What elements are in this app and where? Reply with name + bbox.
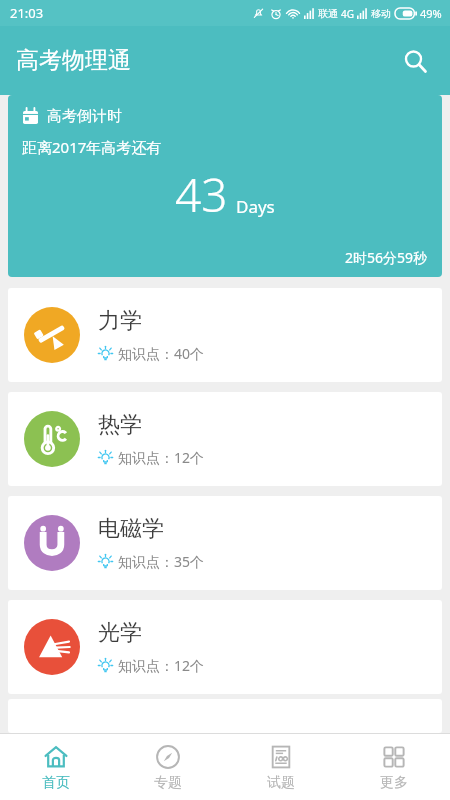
staticText: 4G xyxy=(341,7,354,21)
staticText: 试题 xyxy=(267,774,295,792)
staticText: 2时56分59秒 xyxy=(345,248,428,267)
staticText: 知识点：12个 xyxy=(118,448,205,467)
staticText: 电磁学 xyxy=(98,515,164,543)
button[interactable]: 热学 xyxy=(8,392,442,486)
button[interactable]: Search xyxy=(388,34,442,88)
staticText: 高考倒计时 xyxy=(47,107,122,126)
button[interactable]: 高考倒计时 xyxy=(8,95,442,277)
button[interactable]: 首页 xyxy=(0,734,112,800)
staticText: 光学 xyxy=(98,619,142,647)
button[interactable]: 专题 xyxy=(112,734,224,800)
staticText: 热学 xyxy=(98,411,142,439)
staticText: 49% xyxy=(420,6,442,21)
staticText: 专题 xyxy=(154,774,182,792)
staticText: 21:03 xyxy=(10,4,44,22)
staticText: 更多 xyxy=(380,774,408,792)
staticText: 知识点：35个 xyxy=(118,552,205,571)
staticText: 首页 xyxy=(42,774,70,792)
staticText: 移动 xyxy=(371,7,391,20)
staticText: 力学 xyxy=(98,307,142,335)
button[interactable]: 更多 xyxy=(337,734,450,800)
staticText: 距离2017年高考还有 xyxy=(22,137,162,157)
staticText: 43 xyxy=(175,163,228,226)
staticText: 知识点：40个 xyxy=(118,344,205,363)
staticText: Days xyxy=(236,195,275,218)
button[interactable]: 力学 xyxy=(8,288,442,382)
button[interactable]: 电磁学 xyxy=(8,496,442,590)
staticText: 知识点：12个 xyxy=(118,656,205,675)
staticText: 高考物理通 xyxy=(16,46,131,75)
button[interactable]: 光学 xyxy=(8,600,442,694)
button[interactable]: 试题 xyxy=(224,734,337,800)
staticText: 联通 xyxy=(318,7,338,20)
